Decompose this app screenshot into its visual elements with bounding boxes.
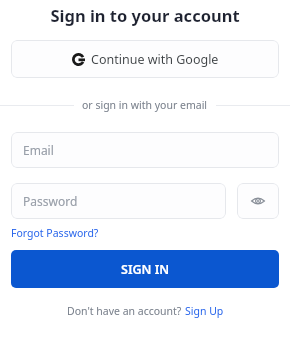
button[interactable]: Email — [11, 132, 279, 168]
staticText: SIGN IN — [121, 261, 170, 278]
button[interactable]: Forgot Password? — [11, 226, 99, 240]
staticText: Don't have an account? — [67, 304, 185, 318]
staticText: Password — [23, 193, 78, 209]
staticText: Forgot Password? — [11, 226, 99, 240]
staticText: Sign Up — [185, 304, 224, 318]
staticText: Email — [23, 142, 54, 158]
staticText: Continue with Google — [91, 51, 219, 68]
button[interactable]: Password — [11, 183, 226, 219]
button[interactable]: Sign Up — [185, 304, 224, 318]
button[interactable]: Show password — [237, 183, 279, 219]
staticText: Sign in to your account — [0, 4, 290, 26]
button[interactable]: Continue with Google — [11, 40, 279, 78]
button[interactable]: SIGN IN — [11, 250, 279, 288]
staticText: or sign in with your email — [82, 98, 208, 112]
